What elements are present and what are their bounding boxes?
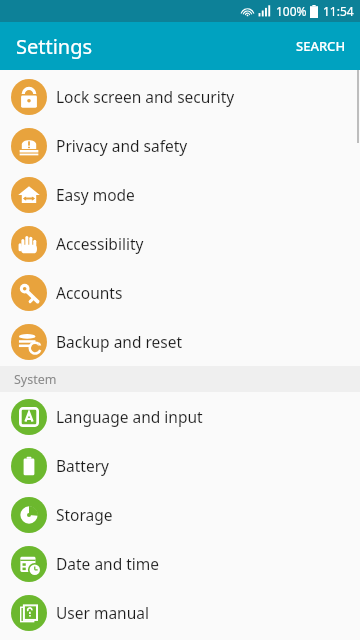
staticText: Accounts [56,282,123,303]
button[interactable]: User manual [0,588,360,637]
staticText: User manual [56,602,149,623]
button[interactable]: Accessibility [0,219,360,268]
button[interactable]: Battery [0,441,360,490]
staticText: System [14,371,57,388]
button[interactable]: Easy mode [0,170,360,219]
staticText: Privacy and safety [56,135,188,156]
button[interactable]: Backup and reset [0,317,360,366]
staticText: Language and input [56,406,203,427]
button[interactable]: Privacy and safety [0,121,360,170]
button[interactable]: Accounts [0,268,360,317]
staticText: SEARCH [296,37,346,55]
button[interactable]: SEARCH [282,25,360,67]
staticText: Lock screen and security [56,86,235,107]
button[interactable]: Lock screen and security [0,72,360,121]
staticText: Backup and reset [56,331,183,352]
staticText: Storage [56,504,113,525]
button[interactable]: Storage [0,490,360,539]
button[interactable]: Language and input [0,392,360,441]
staticText: 100% [276,3,307,19]
staticText: Battery [56,455,110,476]
button[interactable]: Date and time [0,539,360,588]
staticText: 11:54 [323,3,354,19]
staticText: Accessibility [56,233,144,254]
staticText: Easy mode [56,184,135,205]
staticText: Settings [16,33,93,60]
staticText: Date and time [56,553,160,574]
